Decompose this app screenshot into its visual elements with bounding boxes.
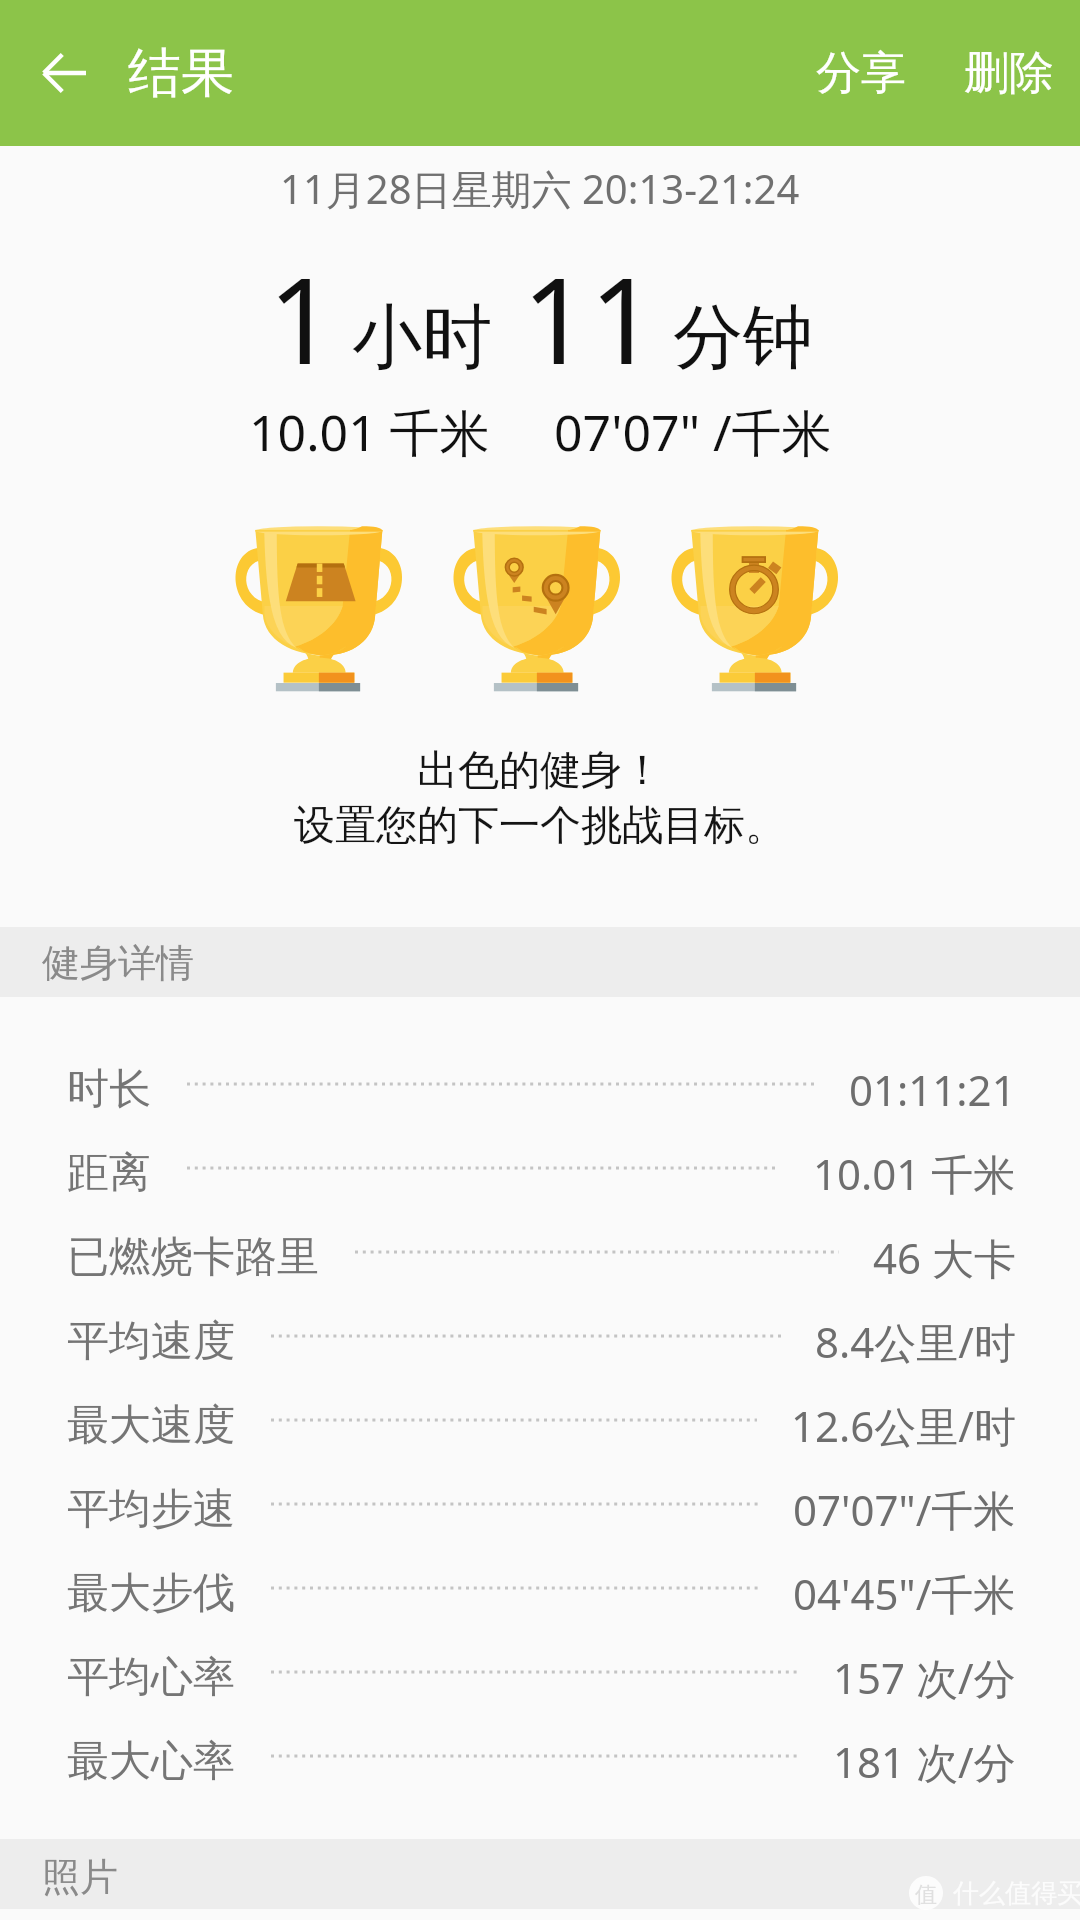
staticText: 1	[268, 238, 336, 399]
button[interactable]: Back	[18, 27, 110, 119]
button[interactable]: 最大步伐	[0, 1551, 1080, 1635]
staticText: 11	[522, 238, 657, 399]
staticText: 分钟	[673, 294, 813, 382]
button[interactable]: 删除	[938, 15, 1080, 132]
staticText: 设置您的下一个挑战目标。	[294, 800, 786, 852]
staticText: 46 大卡	[873, 1229, 1016, 1286]
staticText: 07'07"/千米	[793, 1481, 1016, 1538]
button[interactable]: 平均速度	[0, 1299, 1080, 1383]
button[interactable]: 已燃烧卡路里	[0, 1215, 1080, 1299]
staticText: 01:11:21	[849, 1061, 1016, 1118]
staticText: 平均步速	[67, 1483, 235, 1536]
staticText: 删除	[964, 45, 1054, 102]
staticText: 结果	[128, 40, 234, 107]
staticText: 最大步伐	[67, 1567, 235, 1620]
staticText: 12.6公里/时	[791, 1397, 1016, 1454]
staticText: 值	[915, 1881, 937, 1909]
staticText: 07'07" /千米	[554, 398, 832, 466]
staticText: 04'45"/千米	[793, 1565, 1016, 1622]
staticText: 平均速度	[67, 1315, 235, 1368]
staticText: 10.01 千米	[249, 398, 490, 466]
button[interactable]: 时长	[0, 1047, 1080, 1131]
button[interactable]: 平均心率	[0, 1635, 1080, 1719]
staticText: 健身详情	[42, 939, 194, 987]
staticText: 时长	[67, 1063, 151, 1116]
staticText: 照片	[42, 1853, 118, 1901]
staticText: 什么值得买	[953, 1877, 1080, 1910]
staticText: 157 次/分	[833, 1649, 1016, 1706]
staticText: 小时	[352, 294, 492, 382]
button[interactable]: 最大心率	[0, 1719, 1080, 1803]
button[interactable]: 分享	[790, 15, 932, 132]
staticText: 8.4公里/时	[815, 1313, 1016, 1370]
staticText: 出色的健身！	[417, 745, 663, 797]
button[interactable]: 最大速度	[0, 1383, 1080, 1467]
staticText: 最大速度	[67, 1399, 235, 1452]
staticText: 10.01 千米	[813, 1145, 1016, 1202]
staticText: 平均心率	[67, 1651, 235, 1704]
staticText: 已燃烧卡路里	[67, 1231, 319, 1284]
staticText: 最大心率	[67, 1735, 235, 1788]
staticText: 距离	[67, 1147, 151, 1200]
button[interactable]: 距离	[0, 1131, 1080, 1215]
staticText: 181 次/分	[833, 1733, 1016, 1790]
staticText: 11月28日星期六 20:13-21:24	[280, 161, 800, 216]
button[interactable]: 平均步速	[0, 1467, 1080, 1551]
staticText: 分享	[816, 45, 906, 102]
